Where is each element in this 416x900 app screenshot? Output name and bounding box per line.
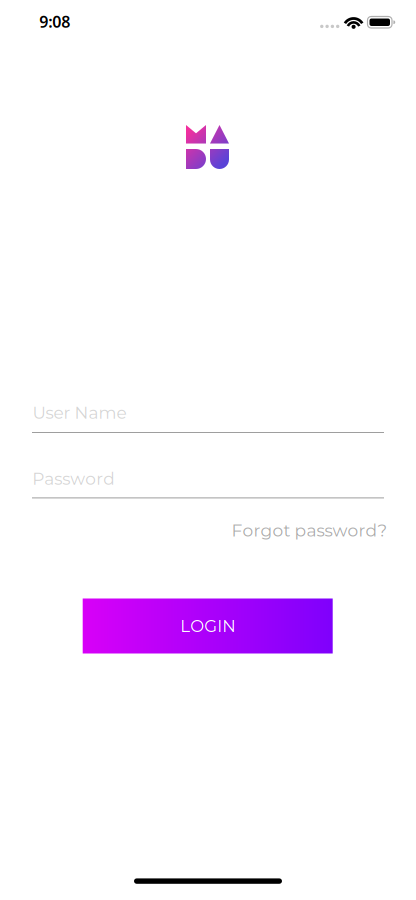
staticText: User Name	[32, 402, 126, 423]
staticText: 9:08	[39, 11, 70, 32]
staticText: Password	[32, 468, 114, 489]
button[interactable]: User Name	[32, 400, 384, 433]
button[interactable]: Forgot password?	[231, 520, 387, 541]
button[interactable]: LOGIN	[83, 598, 333, 653]
staticText: LOGIN	[180, 616, 235, 636]
button[interactable]: Password	[32, 463, 384, 498]
staticText: Forgot password?	[231, 520, 387, 541]
